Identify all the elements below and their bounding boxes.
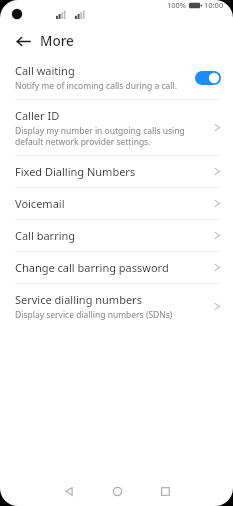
staticText: Call barring — [15, 228, 76, 243]
staticText: Service dialling numbers — [15, 292, 142, 307]
button[interactable]: Call barring — [0, 220, 233, 251]
button[interactable]: Home — [93, 476, 141, 506]
staticText: 100% — [167, 0, 187, 10]
button[interactable]: Recent apps — [141, 476, 189, 506]
button[interactable]: Call waiting toggle, on — [195, 71, 221, 85]
staticText: Change call barring password — [15, 260, 169, 275]
button[interactable]: Back — [12, 30, 34, 52]
button[interactable]: Fixed Dialling Numbers — [0, 156, 233, 187]
staticText: Notify me of incoming calls during a cal… — [15, 80, 177, 92]
staticText: Display my number in outgoing calls usin… — [15, 125, 185, 147]
button[interactable]: Voicemail — [0, 188, 233, 219]
button[interactable]: Call waiting — [0, 56, 233, 99]
staticText: Call waiting — [15, 63, 75, 78]
staticText: More — [40, 32, 74, 50]
staticText: Voicemail — [15, 196, 65, 211]
button[interactable]: Service dialling numbers — [0, 284, 233, 329]
staticText: 10:00 — [204, 0, 224, 10]
staticText: Caller ID — [15, 108, 60, 123]
button[interactable]: Back — [45, 476, 93, 506]
button[interactable]: Change call barring password — [0, 252, 233, 283]
staticText: Display service dialling numbers (SDNs) — [15, 309, 173, 321]
staticText: Fixed Dialling Numbers — [15, 164, 136, 179]
button[interactable]: Caller ID — [0, 100, 233, 155]
